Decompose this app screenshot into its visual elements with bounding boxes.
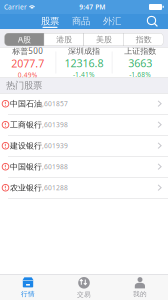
- staticText: -1.68%: [129, 70, 151, 79]
- staticText: 9:47 PM: [79, 3, 105, 11]
- button[interactable]: A股: [4, 33, 44, 46]
- button[interactable]: 搜索: [141, 14, 164, 29]
- button[interactable]: 中国石油: [0, 93, 168, 114]
- staticText: -1.41%: [73, 70, 95, 79]
- button[interactable]: 股票: [34, 14, 65, 29]
- staticText: ,601857: [42, 99, 68, 108]
- staticText: Carrier: [4, 3, 27, 11]
- staticText: 中国银行: [10, 162, 42, 172]
- staticText: 建设银行: [10, 141, 42, 151]
- staticText: 深圳成指: [68, 46, 100, 56]
- staticText: 港股: [56, 35, 72, 44]
- button[interactable]: 中国银行: [0, 156, 168, 177]
- staticText: 热门股票: [6, 80, 42, 91]
- staticText: ,601398: [42, 120, 68, 129]
- button[interactable]: 深圳成指: [56, 47, 112, 78]
- staticText: 上证指数: [124, 46, 156, 56]
- staticText: ,601288: [42, 183, 68, 192]
- staticText: 3663: [128, 56, 152, 70]
- staticText: 外汇: [103, 15, 121, 27]
- staticText: ,601988: [42, 162, 68, 171]
- button[interactable]: 建设银行: [0, 135, 168, 156]
- staticText: ,601939: [42, 141, 68, 150]
- button[interactable]: 商品: [65, 14, 96, 29]
- staticText: 工商银行: [10, 120, 42, 130]
- button[interactable]: 农业银行: [0, 177, 168, 198]
- staticText: 行情: [21, 290, 35, 298]
- button[interactable]: 指数: [124, 33, 164, 46]
- button[interactable]: 港股: [44, 33, 84, 46]
- button[interactable]: 标普500: [0, 47, 56, 78]
- button[interactable]: 外汇: [96, 14, 127, 29]
- staticText: A股: [18, 34, 31, 45]
- staticText: 商品: [72, 15, 90, 27]
- button[interactable]: 工商银行: [0, 114, 168, 135]
- staticText: 中国石油: [10, 99, 42, 109]
- staticText: 指数: [136, 35, 152, 44]
- staticText: 股票: [41, 15, 59, 27]
- staticText: 标普500: [12, 46, 43, 56]
- staticText: 交易: [77, 290, 91, 299]
- staticText: 2077.7: [11, 56, 44, 70]
- staticText: 0.49%: [18, 70, 38, 79]
- staticText: 12316.8: [64, 56, 103, 70]
- button[interactable]: 上证指数: [112, 47, 168, 78]
- button[interactable]: 行情: [0, 275, 56, 300]
- staticText: 美股: [96, 35, 112, 44]
- button[interactable]: 我的: [112, 275, 168, 300]
- staticText: 农业银行: [10, 183, 42, 193]
- button[interactable]: 美股: [84, 33, 124, 46]
- button[interactable]: 交易: [56, 275, 112, 300]
- staticText: 我的: [133, 290, 147, 298]
